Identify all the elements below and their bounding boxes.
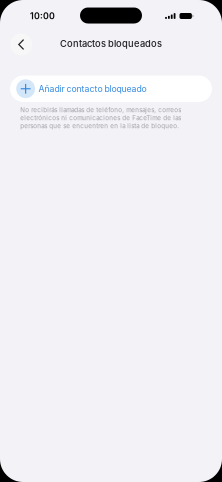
staticText: 10:00 xyxy=(30,11,55,21)
staticText: Añadir contacto bloqueado xyxy=(38,83,146,94)
staticText: No recibirás llamadas de teléfono, mensa… xyxy=(20,106,181,130)
staticText: Contactos bloqueados xyxy=(60,38,162,49)
button[interactable]: Atrás xyxy=(10,33,32,55)
button[interactable]: Añadir contacto bloqueado xyxy=(10,75,212,102)
